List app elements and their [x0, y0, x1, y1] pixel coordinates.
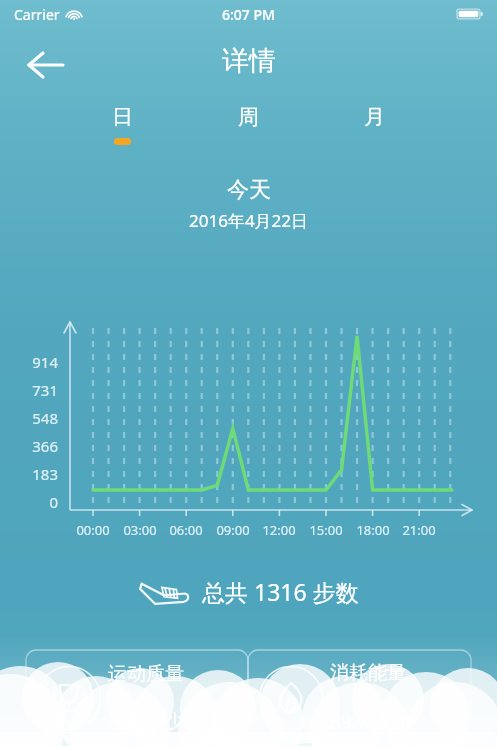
button[interactable]: 运动质量: [26, 650, 248, 746]
staticText: 06:00: [163, 521, 209, 539]
staticText: 月: [364, 104, 385, 130]
staticText: 运动太少: [108, 710, 184, 734]
staticText: 15:00: [303, 521, 349, 539]
staticText: 366: [0, 436, 58, 456]
staticText: 消耗能量: [330, 661, 406, 685]
staticText: 详情: [222, 44, 276, 78]
staticText: 日: [112, 104, 133, 130]
button[interactable]: 周: [185, 104, 311, 160]
staticText: 548: [0, 408, 58, 428]
staticText: 183: [0, 464, 58, 484]
staticText: 731: [0, 380, 58, 400]
staticText: 21:00: [396, 521, 442, 539]
staticText: 12:00: [256, 521, 302, 539]
staticText: 6:07 PM: [222, 5, 275, 24]
button[interactable]: Back: [20, 40, 72, 90]
staticText: Carrier: [14, 5, 60, 24]
staticText: 18:00: [350, 521, 396, 539]
staticText: 今天: [227, 176, 271, 204]
staticText: 03:00: [117, 521, 163, 539]
staticText: 周: [238, 104, 259, 130]
staticText: 09:00: [210, 521, 256, 539]
staticText: 00:00: [70, 521, 116, 539]
staticText: 2016年4月22日: [189, 209, 309, 232]
staticText: 914: [0, 352, 58, 372]
button[interactable]: 日: [60, 104, 185, 160]
staticText: 运动质量: [108, 662, 184, 686]
staticText: 总共 1316 步数: [202, 576, 359, 607]
button[interactable]: 消耗能量: [248, 650, 471, 746]
button[interactable]: 月: [311, 104, 437, 160]
staticText: 0: [0, 492, 58, 512]
